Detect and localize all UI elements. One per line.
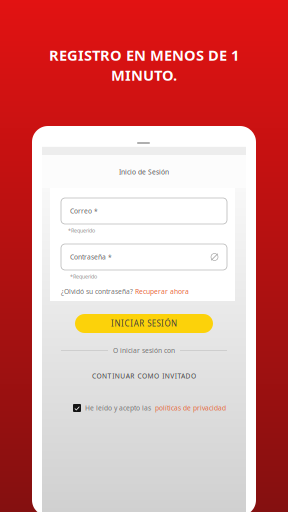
button[interactable]: He leído y acepto las [73, 403, 225, 413]
staticText: ¿Olvidó su contraseña? [61, 287, 133, 296]
staticText: Correo * [70, 207, 98, 215]
staticText: políticas de privacidad [155, 404, 226, 412]
button[interactable]: ¿Olvidó su contraseña? [61, 287, 227, 296]
staticText: Recuperar ahora [135, 287, 189, 296]
staticText: *Requerido [68, 227, 95, 234]
staticText: O iniciar sesión con [113, 346, 175, 355]
staticText: MINUTO. [111, 65, 177, 85]
staticText: *Requerido [70, 273, 97, 280]
button[interactable]: INICIAR SESIÓN [75, 314, 213, 333]
staticText: REGISTRO EN MENOS DE 1 [49, 45, 239, 65]
staticText: He leído y acepto las [85, 404, 151, 412]
staticText: INICIAR SESIÓN [111, 318, 177, 329]
staticText: Contraseña * [70, 253, 112, 261]
staticText: Inicio de Sesión [119, 168, 169, 176]
button[interactable]: CONTINUAR COMO INVITADO [61, 370, 227, 382]
staticText: CONTINUAR COMO INVITADO [92, 372, 196, 380]
